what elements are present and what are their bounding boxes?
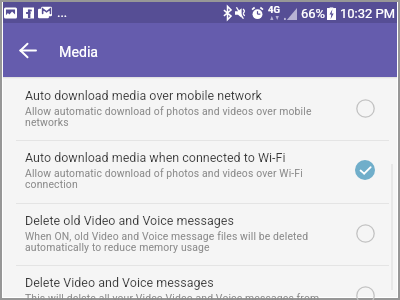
staticText: Media bbox=[59, 44, 99, 61]
staticText: This will delete all your Video Video an… bbox=[25, 292, 323, 300]
button[interactable]: Auto download media over mobile network bbox=[3, 77, 397, 139]
staticText: 10:32 PM bbox=[340, 6, 396, 21]
staticText: Delete Video and Voice messages bbox=[25, 275, 214, 290]
staticText: When ON, old Video and Voice message fil… bbox=[25, 230, 323, 254]
staticText: Allow automatic download of photos and v… bbox=[25, 167, 323, 191]
button[interactable]: Delete Video and Voice messages bbox=[3, 264, 397, 300]
staticText: 4G bbox=[268, 4, 280, 15]
staticText: Auto download media over mobile network bbox=[25, 88, 262, 103]
staticText: Delete old Video and Voice messages bbox=[25, 213, 234, 228]
button[interactable]: Navigate up bbox=[11, 33, 45, 67]
staticText: 66% bbox=[301, 6, 326, 21]
staticText: Auto download media when connected to Wi… bbox=[25, 150, 286, 165]
button[interactable]: Auto download media when connected to Wi… bbox=[3, 139, 397, 201]
button[interactable]: Delete old Video and Voice messages bbox=[3, 202, 397, 264]
staticText: Allow automatic download of photos and v… bbox=[25, 105, 323, 129]
staticText: ... bbox=[57, 5, 68, 20]
